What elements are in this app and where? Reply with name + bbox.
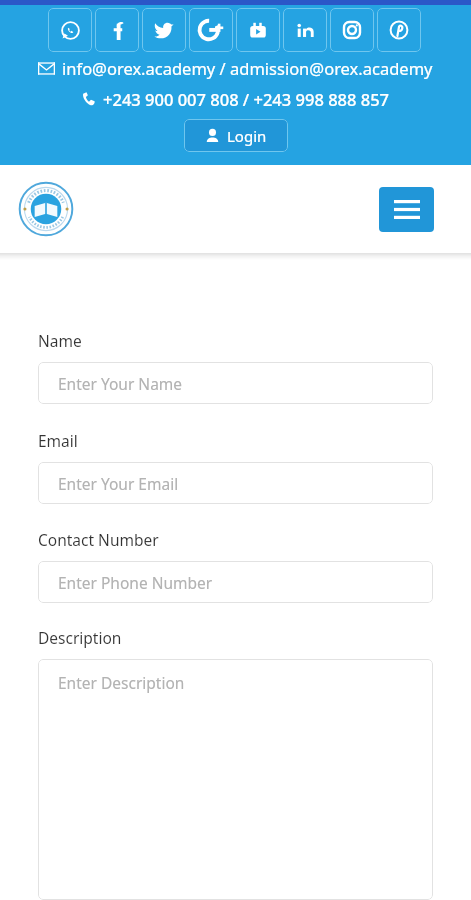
staticText: info@orex.academy / admission@orex.acade… <box>62 57 433 79</box>
staticText: Description <box>38 627 122 648</box>
staticText: Email <box>38 430 78 451</box>
button[interactable]: WhatsApp <box>48 8 92 52</box>
button[interactable]: +243 900 007 808 / +243 998 888 857 <box>0 88 471 110</box>
button[interactable]: Enter Your Name <box>38 362 433 404</box>
button[interactable]: Enter Your Email <box>38 462 433 504</box>
staticText: Enter Your Name <box>58 373 183 394</box>
button[interactable]: Google Plus <box>189 8 233 52</box>
other: LinkedIn <box>296 21 315 40</box>
staticText: Login <box>227 126 267 146</box>
other: Pinterest <box>389 20 409 40</box>
button[interactable]: YouTube <box>236 8 280 52</box>
other: Twitter <box>154 20 174 40</box>
button[interactable]: Facebook <box>95 8 139 52</box>
staticText: Enter Phone Number <box>58 572 213 593</box>
button[interactable]: LinkedIn <box>283 8 327 52</box>
other: YouTube <box>248 20 268 40</box>
other: Facebook <box>108 21 127 40</box>
staticText: Enter Description <box>58 672 185 693</box>
button[interactable]: Enter Phone Number <box>38 561 433 603</box>
button[interactable]: Twitter <box>142 8 186 52</box>
other: Google Plus <box>200 19 222 41</box>
staticText: Enter Your Email <box>58 473 179 494</box>
other: WhatsApp <box>60 20 81 41</box>
button[interactable]: Menu <box>379 187 434 232</box>
staticText: +243 900 007 808 / +243 998 888 857 <box>103 88 390 110</box>
button[interactable]: info@orex.academy / admission@orex.acade… <box>0 57 471 79</box>
staticText: Name <box>38 330 82 351</box>
button[interactable]: Enter Description <box>38 659 433 900</box>
button[interactable]: Instagram <box>330 8 374 52</box>
staticText: Contact Number <box>38 529 159 550</box>
button[interactable]: Orex Academy home <box>18 181 74 237</box>
button[interactable]: Pinterest <box>377 8 421 52</box>
button[interactable]: Login <box>184 119 288 152</box>
other: Instagram <box>342 20 362 40</box>
